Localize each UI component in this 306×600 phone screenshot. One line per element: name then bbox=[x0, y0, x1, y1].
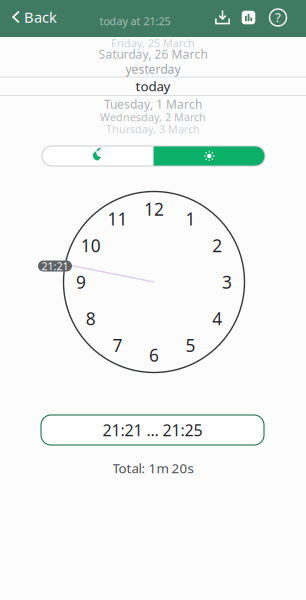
staticText: 5 bbox=[185, 334, 195, 357]
staticText: Friday, 25 March bbox=[111, 36, 195, 50]
staticText: ? bbox=[275, 8, 281, 26]
button[interactable]: today bbox=[0, 80, 306, 92]
staticText: Total: 1m 20s bbox=[112, 459, 193, 477]
staticText: 7 bbox=[112, 334, 122, 357]
staticText: 21:21 ... 21:25 bbox=[102, 419, 202, 441]
button[interactable]: Download bbox=[210, 5, 235, 29]
staticText: Thursday, 3 March bbox=[106, 122, 200, 136]
staticText: 12 bbox=[144, 197, 164, 220]
button[interactable]: 21:21 ... 21:25 bbox=[41, 415, 264, 445]
staticText: 6 bbox=[149, 343, 159, 366]
staticText: 8 bbox=[86, 307, 96, 330]
staticText: Saturday, 26 March bbox=[98, 46, 207, 62]
staticText: 1 bbox=[185, 207, 195, 230]
staticText: Tuesday, 1 March bbox=[104, 96, 202, 112]
staticText: 9 bbox=[76, 270, 86, 293]
staticText: today bbox=[135, 77, 170, 95]
staticText: 2 bbox=[212, 234, 222, 257]
staticText: 3 bbox=[222, 270, 232, 293]
staticText: 21:21 bbox=[41, 259, 68, 273]
button[interactable]: Help bbox=[265, 5, 290, 30]
button[interactable]: Back bbox=[1, 0, 65, 37]
staticText: Back bbox=[24, 7, 57, 27]
button[interactable]: yesterday bbox=[0, 63, 306, 75]
staticText: 4 bbox=[212, 307, 222, 330]
button[interactable]: Wednesday, 2 March bbox=[0, 111, 306, 123]
staticText: yesterday bbox=[125, 61, 180, 77]
staticText: today at 21:25 bbox=[99, 14, 170, 28]
button[interactable]: Night bbox=[42, 146, 153, 166]
button[interactable]: Tuesday, 1 March bbox=[0, 98, 306, 110]
button[interactable]: Thursday, 3 March bbox=[0, 123, 306, 135]
button[interactable]: Statistics bbox=[237, 6, 260, 29]
button[interactable]: Day bbox=[153, 146, 265, 166]
button[interactable]: Saturday, 26 March bbox=[0, 48, 306, 60]
staticText: 11 bbox=[107, 207, 127, 230]
staticText: Wednesday, 2 March bbox=[100, 110, 206, 124]
staticText: 10 bbox=[81, 234, 101, 257]
button[interactable]: Friday, 25 March bbox=[0, 37, 306, 49]
